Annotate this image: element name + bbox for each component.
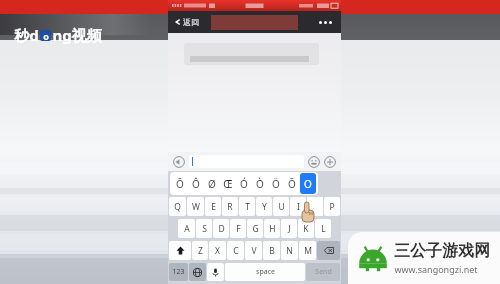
staticText: W xyxy=(192,201,200,213)
button[interactable]: Shift xyxy=(169,241,191,260)
staticText: S xyxy=(202,223,207,235)
staticText: space xyxy=(256,267,275,277)
button[interactable]: R xyxy=(222,197,238,216)
staticText: Œ xyxy=(223,177,233,191)
button[interactable]: S xyxy=(196,219,212,238)
staticText: D xyxy=(218,223,225,235)
button[interactable]: Ø xyxy=(204,173,220,194)
staticText: Õ xyxy=(288,177,296,191)
staticText: I xyxy=(297,201,300,213)
staticText: M xyxy=(304,245,312,257)
button[interactable]: Ö xyxy=(268,173,284,194)
button[interactable]: C xyxy=(227,241,244,260)
button[interactable]: F xyxy=(230,219,246,238)
button[interactable]: E xyxy=(205,197,221,216)
button[interactable]: Ō xyxy=(172,173,188,194)
staticText: 秒d xyxy=(14,25,39,45)
staticText: Ô xyxy=(192,177,200,191)
staticText: G xyxy=(252,223,259,235)
button[interactable]: Change keyboard xyxy=(189,263,206,281)
button[interactable]: Emoji xyxy=(308,156,320,168)
staticText: O xyxy=(304,177,312,191)
button[interactable]: O xyxy=(300,173,316,194)
staticText: ng视频 xyxy=(52,25,102,45)
button[interactable]: A xyxy=(178,219,195,238)
button[interactable]: U xyxy=(273,197,289,216)
button[interactable]: Voice message xyxy=(173,156,185,168)
button[interactable]: Œ xyxy=(220,173,236,194)
staticText: X xyxy=(215,245,220,257)
staticText: T xyxy=(245,201,250,213)
button[interactable]: D xyxy=(213,219,229,238)
button[interactable]: T xyxy=(239,197,255,216)
staticText: o xyxy=(43,30,49,41)
staticText: Z xyxy=(198,245,203,257)
button[interactable]: Õ xyxy=(284,173,300,194)
button[interactable]: More options xyxy=(310,11,341,33)
button[interactable]: Dictation xyxy=(207,263,224,281)
staticText: J xyxy=(288,223,291,235)
button[interactable]: P xyxy=(324,197,340,216)
staticText: A xyxy=(184,223,190,235)
button[interactable]: X xyxy=(209,241,226,260)
staticText: Y xyxy=(262,201,267,213)
button[interactable]: M xyxy=(299,241,316,260)
staticText: U xyxy=(278,201,285,213)
button[interactable]: W xyxy=(187,197,204,216)
staticText: Q xyxy=(174,201,181,213)
staticText: B xyxy=(269,245,275,257)
staticText: R xyxy=(227,201,233,213)
staticText: F xyxy=(236,223,241,235)
staticText: K xyxy=(303,223,309,235)
button[interactable]: 返回 xyxy=(168,11,206,33)
button[interactable]: H xyxy=(264,219,280,238)
staticText: N xyxy=(286,245,293,257)
button[interactable]: Ò xyxy=(252,173,268,194)
staticText: Send xyxy=(315,267,332,277)
staticText: Ö xyxy=(272,177,280,191)
button[interactable]: V xyxy=(245,241,262,260)
button[interactable]: Y xyxy=(256,197,272,216)
staticText: 123 xyxy=(172,267,185,277)
button[interactable]: Ó xyxy=(236,173,252,194)
staticText: L xyxy=(321,223,326,235)
button[interactable]: L xyxy=(315,219,331,238)
staticText: Ó xyxy=(240,177,248,191)
staticText: H xyxy=(269,223,276,235)
button[interactable]: Add attachment xyxy=(324,156,336,168)
button[interactable]: N xyxy=(281,241,298,260)
staticText: 三公子游戏网 xyxy=(394,241,490,261)
staticText: www.sangongzi.net xyxy=(394,263,478,275)
button[interactable]: Z xyxy=(192,241,208,260)
button[interactable]: J xyxy=(281,219,297,238)
staticText: E xyxy=(211,201,216,213)
button[interactable]: Backspace xyxy=(317,241,340,260)
staticText: Ø xyxy=(208,177,216,191)
staticText: P xyxy=(329,201,335,213)
staticText: C xyxy=(233,245,239,257)
button[interactable]: Ô xyxy=(188,173,204,194)
staticText: Ò xyxy=(256,177,264,191)
staticText: Ō xyxy=(176,177,184,191)
button[interactable]: Send xyxy=(306,263,340,281)
button[interactable]: G xyxy=(247,219,263,238)
staticText: V xyxy=(251,245,257,257)
button[interactable] xyxy=(189,155,304,168)
button[interactable]: Q xyxy=(169,197,186,216)
button[interactable]: I xyxy=(290,197,306,216)
button[interactable]: B xyxy=(263,241,280,260)
button[interactable]: 123 xyxy=(169,263,188,281)
button[interactable]: K xyxy=(298,219,314,238)
staticText: 返回 xyxy=(183,17,199,27)
button[interactable]: space xyxy=(225,263,305,281)
